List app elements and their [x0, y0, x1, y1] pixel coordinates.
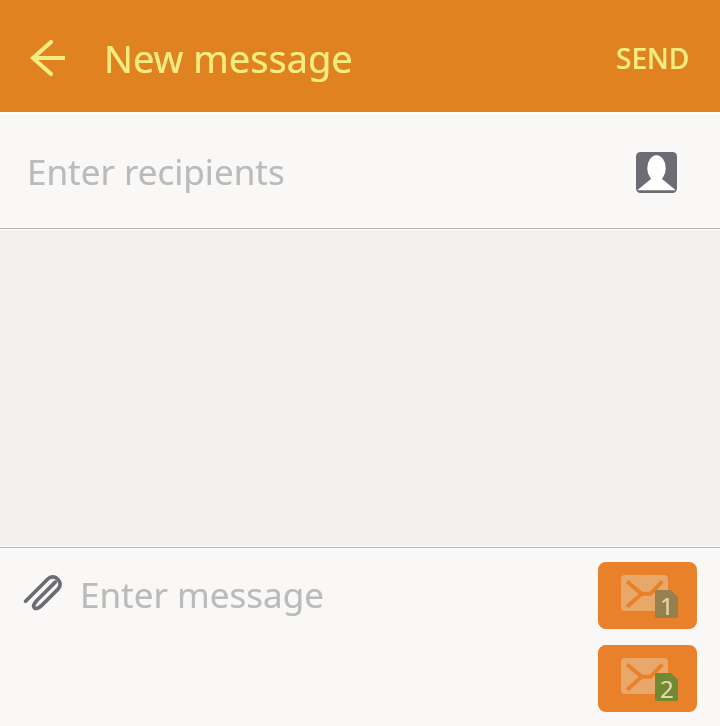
button[interactable]: Back — [20, 28, 76, 84]
staticText: SEND — [616, 39, 690, 77]
staticText: Enter recipients — [27, 148, 285, 196]
button[interactable]: Choose contact — [629, 145, 683, 199]
button[interactable]: SEND — [604, 29, 702, 87]
button[interactable]: Attach — [12, 563, 74, 625]
staticText: 2 — [660, 672, 674, 698]
button[interactable]: Enter recipients — [0, 116, 720, 227]
staticText: Enter message — [80, 571, 324, 619]
staticText: New message — [104, 32, 353, 84]
staticText: 1 — [660, 589, 674, 615]
button[interactable]: Send with SIM 2 — [598, 645, 697, 712]
button[interactable]: Send with SIM 1 — [598, 562, 697, 629]
